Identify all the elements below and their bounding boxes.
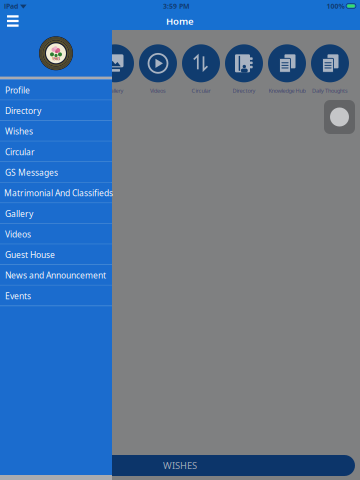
button[interactable]: Matrimonial And Classifieds <box>0 183 112 203</box>
button[interactable]: Profile <box>0 80 112 100</box>
button[interactable]: Directory <box>0 100 112 121</box>
staticText: iPad <box>4 1 18 11</box>
staticText: 3:59 PM <box>163 1 190 11</box>
button[interactable]: Gallery <box>93 43 136 95</box>
staticText: Circular <box>191 87 210 94</box>
button[interactable]: Circular <box>0 141 112 162</box>
staticText: News and Announcement <box>5 269 106 281</box>
staticText: 100% <box>326 1 344 11</box>
staticText: Circular <box>5 146 35 158</box>
staticText: Videos <box>5 228 31 240</box>
button[interactable]: News and Announcement <box>0 265 112 286</box>
staticText: Daily Thoughts <box>312 87 348 94</box>
staticText: Wishes <box>5 125 33 137</box>
button[interactable]: Guest House <box>0 244 112 265</box>
button[interactable]: Loading <box>324 100 355 134</box>
staticText: Profile <box>5 84 30 96</box>
staticText: Gallery <box>106 87 123 94</box>
button[interactable]: WISHES <box>5 455 355 476</box>
staticText: 1983 <box>52 56 60 61</box>
button[interactable]: Daily Thoughts <box>308 43 351 95</box>
button[interactable]: Menu <box>0 12 19 30</box>
button[interactable]: Videos <box>136 43 179 95</box>
staticText: Guest House <box>5 249 55 260</box>
button[interactable]: Knowledge Hub <box>265 43 308 95</box>
staticText: Videos <box>150 87 166 94</box>
button[interactable]: Wishes <box>0 121 112 142</box>
staticText: Matrimonial And Classifieds <box>4 187 113 199</box>
button[interactable]: Events <box>0 286 112 306</box>
button[interactable]: Directory <box>222 43 265 95</box>
staticText: WISHES <box>163 459 197 472</box>
button[interactable]: Circular <box>179 43 222 95</box>
staticText: Knowledge Hub <box>268 87 305 94</box>
button[interactable]: Gallery <box>0 203 112 224</box>
staticText: GS Messages <box>5 167 58 178</box>
button[interactable]: Videos <box>0 224 112 244</box>
staticText: Events <box>5 290 31 302</box>
staticText: Home <box>166 14 194 28</box>
staticText: Directory <box>232 87 255 94</box>
staticText: Directory <box>5 105 41 116</box>
staticText: Gallery <box>5 208 33 219</box>
button[interactable]: GS Messages <box>0 162 112 183</box>
